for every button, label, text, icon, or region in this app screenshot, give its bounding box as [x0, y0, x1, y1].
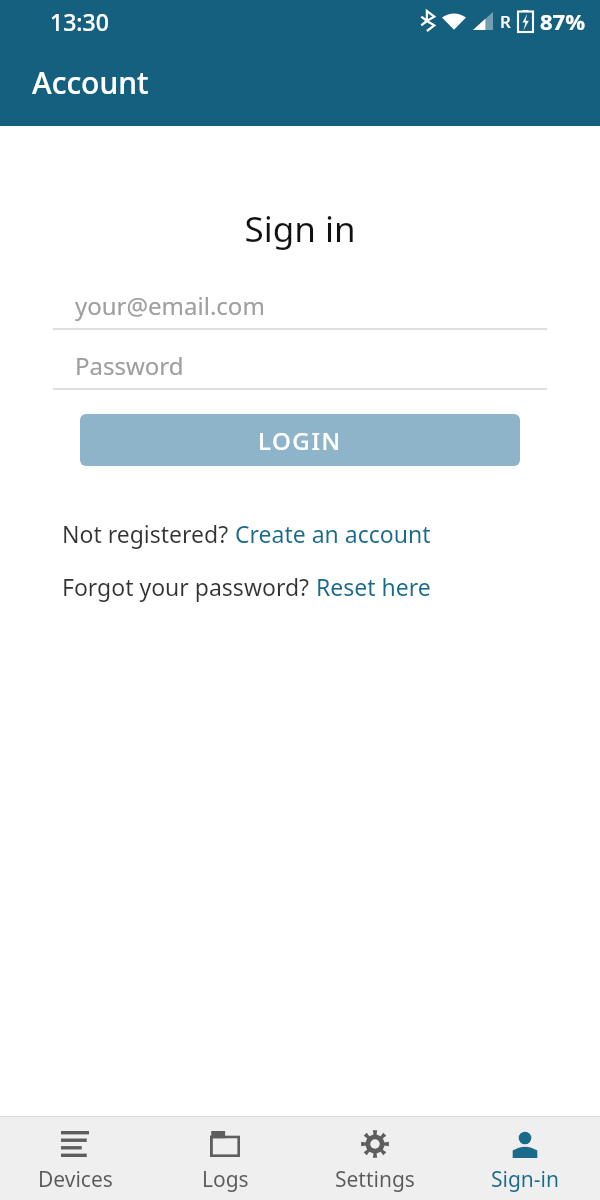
button[interactable]: Logs — [150, 1123, 300, 1194]
staticText: Create an account — [235, 518, 431, 549]
staticText: 13:30 — [50, 6, 109, 37]
button[interactable]: Create an account — [235, 518, 431, 549]
staticText: 87% — [540, 6, 586, 36]
button[interactable]: Settings — [300, 1123, 450, 1194]
button[interactable]: LOGIN — [80, 414, 520, 466]
staticText: Password — [75, 349, 184, 382]
button[interactable]: Reset here — [316, 571, 431, 602]
staticText: Not registered? — [62, 518, 235, 549]
staticText: Account — [32, 62, 149, 103]
button[interactable]: Devices — [0, 1123, 150, 1194]
other: Settings — [361, 1130, 389, 1158]
other: Logs — [210, 1131, 240, 1157]
staticText: Forgot your password? — [62, 571, 316, 602]
staticText: Reset here — [316, 571, 431, 602]
staticText: Settings — [335, 1165, 415, 1194]
staticText: Sign-in — [491, 1165, 559, 1194]
button[interactable]: Password — [53, 342, 547, 390]
staticText: R — [500, 10, 511, 33]
other: Devices — [61, 1131, 89, 1157]
button[interactable]: your@email.com — [53, 282, 547, 330]
other: Sign-in — [511, 1131, 539, 1158]
button[interactable]: Sign-in — [450, 1123, 600, 1194]
staticText: your@email.com — [75, 289, 265, 322]
staticText: Devices — [38, 1165, 113, 1194]
staticText: Logs — [202, 1165, 249, 1194]
staticText: Sign in — [0, 205, 600, 253]
staticText: LOGIN — [258, 424, 342, 457]
